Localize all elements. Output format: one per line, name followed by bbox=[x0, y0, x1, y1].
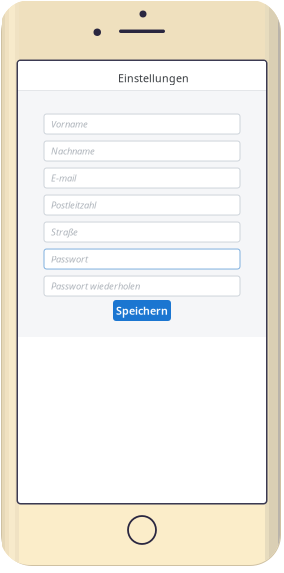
staticText: Einstellungen bbox=[118, 71, 189, 85]
staticText: E-mail bbox=[51, 172, 76, 184]
staticText: Postleitzahl bbox=[51, 199, 96, 211]
staticText: Vorname bbox=[51, 118, 88, 130]
button[interactable]: Speichern bbox=[113, 300, 171, 321]
staticText: Passwort wiederholen bbox=[51, 280, 140, 292]
staticText: Speichern bbox=[116, 303, 168, 318]
staticText: Straße bbox=[51, 226, 78, 238]
staticText: Nachname bbox=[51, 145, 95, 157]
staticText: Passwort bbox=[51, 253, 88, 265]
